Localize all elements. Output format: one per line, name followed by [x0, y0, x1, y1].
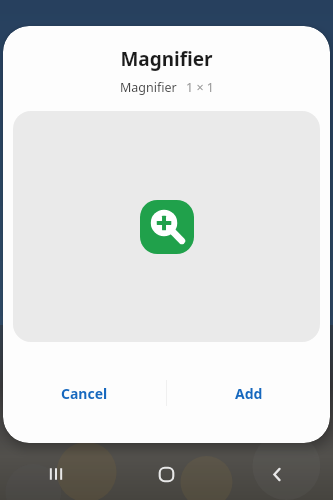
button[interactable]: Recent apps	[0, 448, 111, 500]
button[interactable]: Add	[167, 343, 330, 443]
staticText: Cancel	[61, 384, 108, 403]
staticText: 1 × 1	[186, 79, 214, 96]
button[interactable]: Cancel	[3, 343, 166, 443]
staticText: Add	[235, 384, 263, 403]
staticText: Magnifier	[120, 79, 177, 96]
button[interactable]: Back	[222, 448, 333, 500]
staticText: Magnifier	[3, 46, 330, 72]
button[interactable]: Home	[111, 448, 222, 500]
